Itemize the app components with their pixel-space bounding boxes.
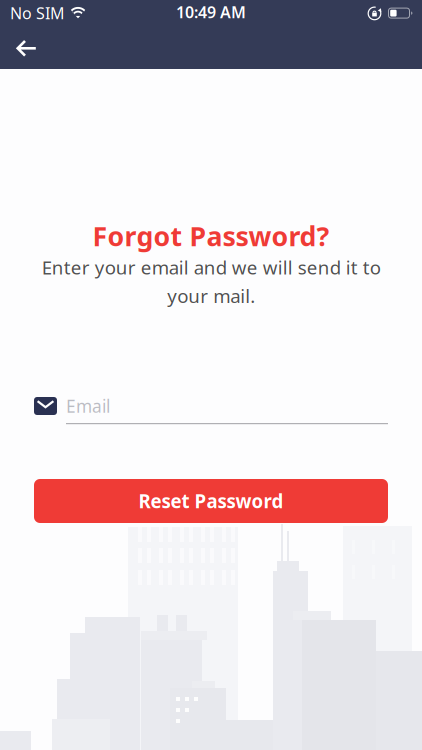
button[interactable]: Email [34, 391, 388, 421]
button[interactable]: Back [0, 37, 37, 57]
staticText: No SIM [10, 2, 65, 24]
staticText: Forgot Password? [92, 218, 329, 254]
staticText: 10:49 AM [176, 1, 246, 23]
staticText: Email [66, 394, 110, 417]
button[interactable]: Reset Password [34, 479, 388, 523]
staticText: Enter your email and we will send it to … [41, 255, 380, 308]
staticText: Reset Password [138, 489, 283, 513]
